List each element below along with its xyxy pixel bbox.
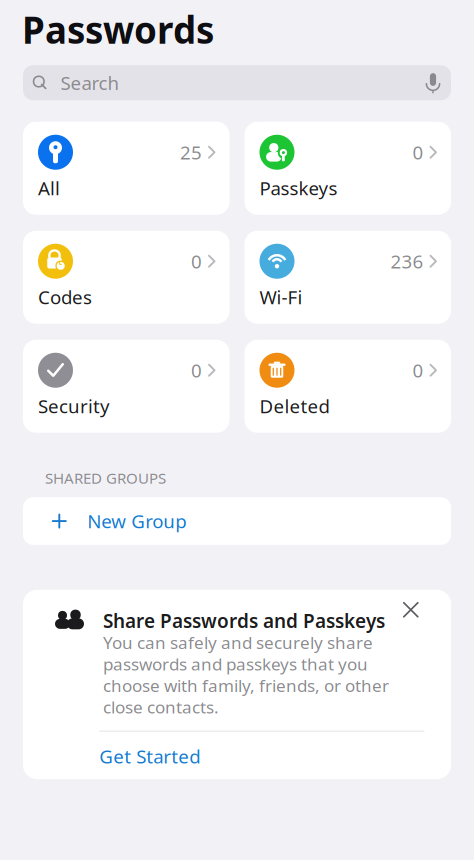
- staticText: Share Passwords and Passkeys: [103, 608, 385, 634]
- staticText: 0: [412, 139, 423, 165]
- staticText: 25: [180, 139, 202, 165]
- staticText: Wi-Fi: [259, 284, 302, 310]
- staticText: 0: [412, 357, 423, 383]
- button[interactable]: New Group: [23, 497, 451, 545]
- staticText: You can safely and securely share passwo…: [103, 631, 389, 718]
- button[interactable]: 0: [23, 340, 229, 433]
- staticText: Codes: [38, 284, 92, 310]
- staticText: Search: [60, 70, 119, 95]
- staticText: 0: [191, 248, 202, 274]
- button[interactable]: 236: [244, 231, 451, 324]
- staticText: Get Started: [99, 744, 200, 769]
- staticText: Passkeys: [259, 175, 337, 201]
- staticText: Passwords: [22, 5, 214, 54]
- staticText: New Group: [87, 508, 186, 534]
- staticText: 0: [191, 357, 202, 383]
- staticText: SHARED GROUPS: [45, 468, 166, 488]
- staticText: Security: [38, 393, 110, 419]
- staticText: 236: [390, 248, 423, 274]
- button[interactable]: 25: [23, 122, 229, 215]
- staticText: Deleted: [259, 393, 329, 419]
- button[interactable]: 0: [244, 340, 451, 433]
- staticText: All: [38, 175, 60, 201]
- button[interactable]: 0: [23, 231, 229, 324]
- button[interactable]: 0: [244, 122, 451, 215]
